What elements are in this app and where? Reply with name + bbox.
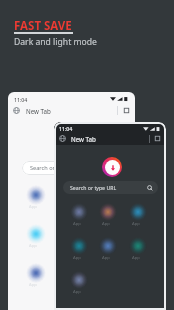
button[interactable]: FAST SAVE	[14, 18, 72, 34]
button[interactable]	[70, 271, 88, 289]
staticText: App	[102, 255, 110, 261]
staticText: App	[29, 204, 37, 210]
button[interactable]	[26, 224, 46, 244]
button[interactable]	[26, 263, 46, 283]
other: Tabs	[123, 107, 130, 114]
staticText: New Tab	[26, 107, 51, 115]
staticText: App	[29, 243, 37, 249]
button[interactable]	[129, 237, 147, 255]
button[interactable]	[99, 237, 117, 255]
button[interactable]: Download	[102, 157, 122, 177]
staticText: Search or type URL	[30, 164, 80, 172]
other: Tabs	[154, 135, 161, 142]
button[interactable]	[129, 203, 147, 221]
button[interactable]	[96, 185, 116, 205]
staticText: App	[132, 255, 140, 261]
staticText: App	[73, 289, 81, 295]
button[interactable]	[99, 203, 117, 221]
staticText: App	[102, 221, 110, 227]
button[interactable]	[61, 185, 81, 205]
button[interactable]	[70, 203, 88, 221]
button[interactable]	[26, 185, 46, 205]
staticText: App	[99, 243, 107, 249]
staticText: App	[29, 282, 37, 288]
staticText: App	[73, 221, 81, 227]
staticText: App	[132, 221, 140, 227]
staticText: New Tab	[71, 135, 96, 143]
staticText: App	[99, 204, 107, 210]
staticText: 11:04	[14, 96, 28, 103]
staticText: 11:04	[59, 125, 73, 132]
button[interactable]	[70, 237, 88, 255]
button[interactable]: Search or type URL	[22, 161, 121, 175]
button[interactable]	[61, 224, 81, 244]
button[interactable]	[61, 263, 81, 283]
staticText: Dark and light mode	[14, 36, 97, 48]
button[interactable]	[96, 224, 116, 244]
staticText: Search or type URL	[70, 184, 117, 191]
button[interactable]: Search or type URL	[63, 181, 158, 194]
staticText: App	[73, 255, 81, 261]
